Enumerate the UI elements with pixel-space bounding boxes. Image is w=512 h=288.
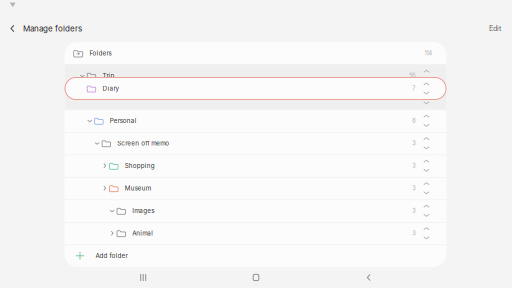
button[interactable]: Museum (64, 177, 446, 199)
staticText: Shopping (125, 162, 155, 170)
staticText: 7 (412, 85, 415, 92)
button[interactable]: Recents (87, 267, 200, 288)
staticText: 3 (412, 207, 415, 214)
staticText: 3 (412, 185, 415, 192)
staticText: Folders (89, 49, 111, 57)
staticText: Museum (125, 184, 151, 192)
button[interactable]: Shopping (64, 154, 446, 177)
staticText: Animal (132, 229, 153, 237)
staticText: 6 (412, 117, 415, 124)
button[interactable]: Add folder (64, 244, 446, 267)
staticText: Diary (102, 85, 119, 92)
staticText: 55 (409, 72, 415, 79)
staticText: 114 (424, 50, 432, 57)
staticText: Add folder (95, 252, 127, 260)
button[interactable]: Back (5, 20, 20, 37)
button[interactable]: Back (312, 267, 425, 288)
staticText: Images (132, 207, 154, 215)
staticText: 3 (412, 162, 415, 169)
button[interactable]: Images (64, 199, 446, 222)
button[interactable]: Diary (64, 77, 446, 100)
staticText: Personal (110, 117, 137, 125)
staticText: Manage folders (23, 24, 82, 33)
button[interactable]: Folders (64, 42, 446, 64)
button[interactable]: Edit (480, 15, 510, 42)
button[interactable]: Personal (64, 109, 446, 132)
button[interactable]: Home (200, 267, 312, 288)
staticText: Screen off memo (117, 139, 169, 147)
staticText: 3 (412, 230, 415, 237)
button[interactable]: Animal (64, 222, 446, 244)
staticText: Trip (102, 72, 114, 80)
staticText: 3 (412, 140, 415, 147)
button[interactable]: Screen off memo (64, 132, 446, 154)
staticText: Edit (489, 24, 501, 33)
